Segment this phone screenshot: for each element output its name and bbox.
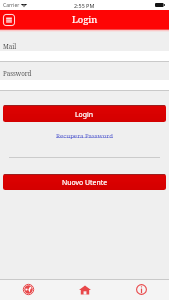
- button[interactable]: World: [0, 279, 57, 300]
- staticText: 2:55 PM: [74, 2, 95, 9]
- staticText: Mail: [3, 42, 17, 50]
- staticText: Carrier: [3, 2, 20, 9]
- staticText: Nuovo Utente: [62, 178, 108, 187]
- button[interactable]: Nuovo Utente: [3, 174, 166, 190]
- button[interactable]: Menu: [3, 14, 15, 26]
- button[interactable]: [0, 51, 169, 62]
- staticText: Login: [75, 110, 94, 119]
- button[interactable]: Info: [113, 279, 169, 300]
- button[interactable]: [0, 80, 169, 91]
- staticText: Password: [3, 69, 32, 77]
- button[interactable]: Recupera Password: [54, 130, 115, 140]
- button[interactable]: Login: [3, 105, 166, 122]
- staticText: Login: [72, 13, 98, 26]
- button[interactable]: Home: [57, 279, 113, 300]
